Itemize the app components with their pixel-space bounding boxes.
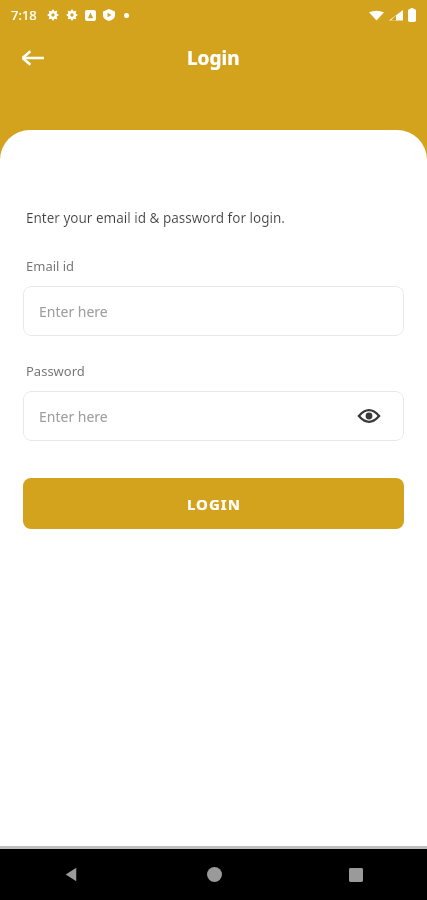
staticText: Login bbox=[187, 45, 240, 71]
staticText: Enter here bbox=[39, 302, 108, 321]
button[interactable]: Enter here bbox=[23, 286, 404, 336]
staticText: Password bbox=[26, 362, 85, 380]
button[interactable]: LOGIN bbox=[23, 478, 404, 529]
button[interactable]: Show password bbox=[354, 401, 384, 431]
button[interactable]: Back bbox=[0, 849, 143, 900]
staticText: 7:18 bbox=[11, 6, 37, 24]
button[interactable]: Enter here bbox=[23, 391, 404, 441]
staticText: Email id bbox=[26, 257, 75, 275]
button[interactable]: Home bbox=[143, 849, 285, 900]
staticText: Enter here bbox=[39, 407, 108, 426]
button[interactable]: Recent apps bbox=[285, 849, 427, 900]
staticText: LOGIN bbox=[187, 494, 241, 514]
staticText: Enter your email id & password for login… bbox=[26, 209, 285, 227]
button[interactable]: Back bbox=[12, 37, 54, 79]
